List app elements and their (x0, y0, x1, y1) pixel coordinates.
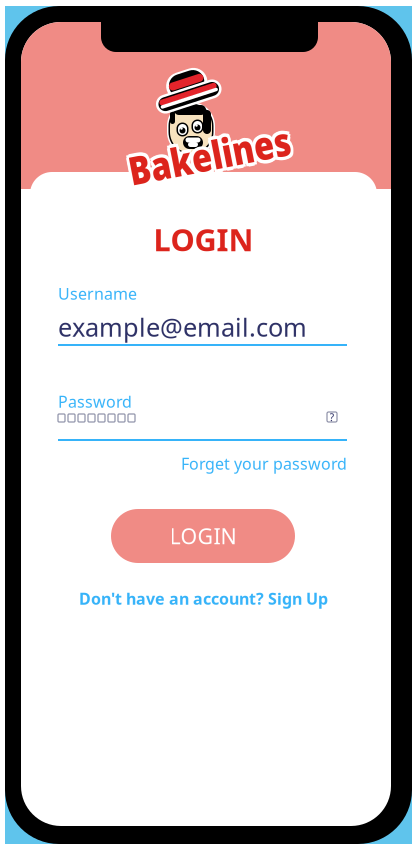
staticText: Bakelines (73, 118, 356, 192)
staticText: Bakelines (72, 122, 355, 196)
staticText: LOGIN (169, 522, 236, 550)
button[interactable]: Forget your password (58, 453, 347, 474)
button[interactable]: Don't have an account? Sign Up (30, 588, 377, 609)
staticText: Bakelines (68, 123, 351, 197)
staticText: Forget your password (181, 453, 347, 474)
staticText: Bakelines (68, 118, 351, 192)
button[interactable]: LOGIN (111, 509, 295, 563)
staticText: Bakelines (63, 118, 346, 192)
staticText: Password (58, 391, 132, 412)
staticText: Bakelines (64, 114, 347, 188)
staticText: Bakelines (64, 122, 347, 196)
staticText: Bakelines (68, 113, 351, 187)
staticText: ? (329, 410, 334, 424)
staticText: example@email.com (58, 310, 307, 344)
staticText: LOGIN (153, 219, 253, 260)
staticText: Don't have an account? Sign Up (79, 588, 328, 609)
button[interactable]: Show password (325, 410, 339, 424)
staticText: Username (58, 283, 137, 304)
staticText: Bakelines (72, 114, 355, 188)
